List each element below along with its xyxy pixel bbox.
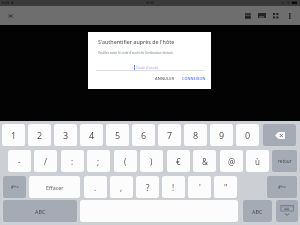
button[interactable]: 5 [106, 124, 129, 146]
staticText: , [120, 182, 123, 193]
button[interactable]: " [214, 176, 237, 198]
button[interactable]: Envoyer une combinaison de touches [241, 9, 254, 22]
staticText: Effacer [46, 184, 64, 191]
staticText: S'authentifier auprès de l'hôte [98, 38, 175, 45]
staticText: #+= [11, 184, 19, 190]
staticText: ANNULER [155, 76, 175, 81]
button[interactable]: € [167, 150, 190, 172]
button[interactable]: & [193, 150, 216, 172]
button[interactable]: retour [272, 150, 297, 172]
button[interactable]: CONNEXION [179, 73, 209, 83]
button[interactable]: / [34, 150, 57, 172]
button[interactable]: Code d'accès [96, 60, 205, 71]
button[interactable]: ANNULER [151, 73, 179, 83]
button[interactable] [276, 200, 298, 222]
staticText: ( [124, 156, 127, 167]
staticText: ? [146, 182, 150, 193]
staticText: " [224, 182, 228, 193]
button[interactable]: ù [246, 150, 269, 172]
button[interactable]: - [8, 150, 31, 172]
staticText: - [18, 156, 21, 167]
staticText: 1 [11, 129, 17, 141]
button[interactable]: . [84, 176, 107, 198]
button[interactable]: #+= [3, 176, 26, 198]
staticText: / [44, 156, 47, 167]
staticText: 5 [115, 129, 121, 141]
button[interactable]: ABC [3, 200, 77, 222]
button[interactable]: Clavier [255, 9, 268, 22]
staticText: ù [255, 156, 260, 167]
button[interactable]: Plein écran [269, 9, 282, 22]
button[interactable]: ( [114, 150, 137, 172]
button[interactable]: 4 [80, 124, 103, 146]
button[interactable]: ? [136, 176, 159, 198]
staticText: 2 [37, 129, 43, 141]
staticText: #+= [278, 184, 286, 190]
staticText: 7 [167, 129, 173, 141]
staticText: ABC [35, 208, 46, 215]
button[interactable]: #+= [267, 176, 297, 198]
button[interactable]: Fermer [3, 8, 18, 23]
staticText: retour [278, 158, 292, 164]
staticText: ) [150, 156, 153, 167]
button[interactable]: 7 [158, 124, 181, 146]
staticText: € [176, 156, 181, 167]
button[interactable]: 1 [2, 124, 25, 146]
staticText: 8 [193, 129, 199, 141]
staticText: . [94, 182, 97, 193]
staticText: ! [172, 182, 175, 193]
button[interactable]: ! [162, 176, 185, 198]
button[interactable]: 0 [236, 124, 259, 146]
staticText: @ [228, 156, 236, 167]
staticText: 3 [63, 129, 69, 141]
staticText: ABC [252, 208, 263, 215]
staticText: 0 [245, 129, 251, 141]
staticText: 9 [219, 129, 225, 141]
button[interactable]: 6 [132, 124, 155, 146]
staticText: Code d'accès [136, 65, 159, 70]
button[interactable]: ' [188, 176, 211, 198]
button[interactable]: 8 [184, 124, 207, 146]
button[interactable] [263, 124, 296, 146]
button[interactable]: 2 [28, 124, 51, 146]
button[interactable]: , [110, 176, 133, 198]
staticText: ; [97, 156, 100, 167]
button[interactable]: 3 [54, 124, 77, 146]
button[interactable]: 9 [210, 124, 233, 146]
staticText: 6 [141, 129, 147, 141]
staticText: ' [199, 182, 201, 193]
staticText: Veuillez saisir le code d'accès de l'ord… [98, 51, 174, 55]
staticText: 4 [89, 129, 95, 141]
button[interactable]: ) [140, 150, 163, 172]
button[interactable]: ABC [243, 200, 272, 222]
button[interactable]: Plus d'options [283, 9, 296, 22]
button[interactable]: @ [220, 150, 243, 172]
button[interactable]: : [61, 150, 84, 172]
button[interactable]: Effacer [29, 176, 80, 198]
staticText: : [71, 156, 74, 167]
staticText: & [202, 156, 208, 167]
button[interactable]: ; [87, 150, 110, 172]
staticText: CONNEXION [182, 76, 206, 81]
